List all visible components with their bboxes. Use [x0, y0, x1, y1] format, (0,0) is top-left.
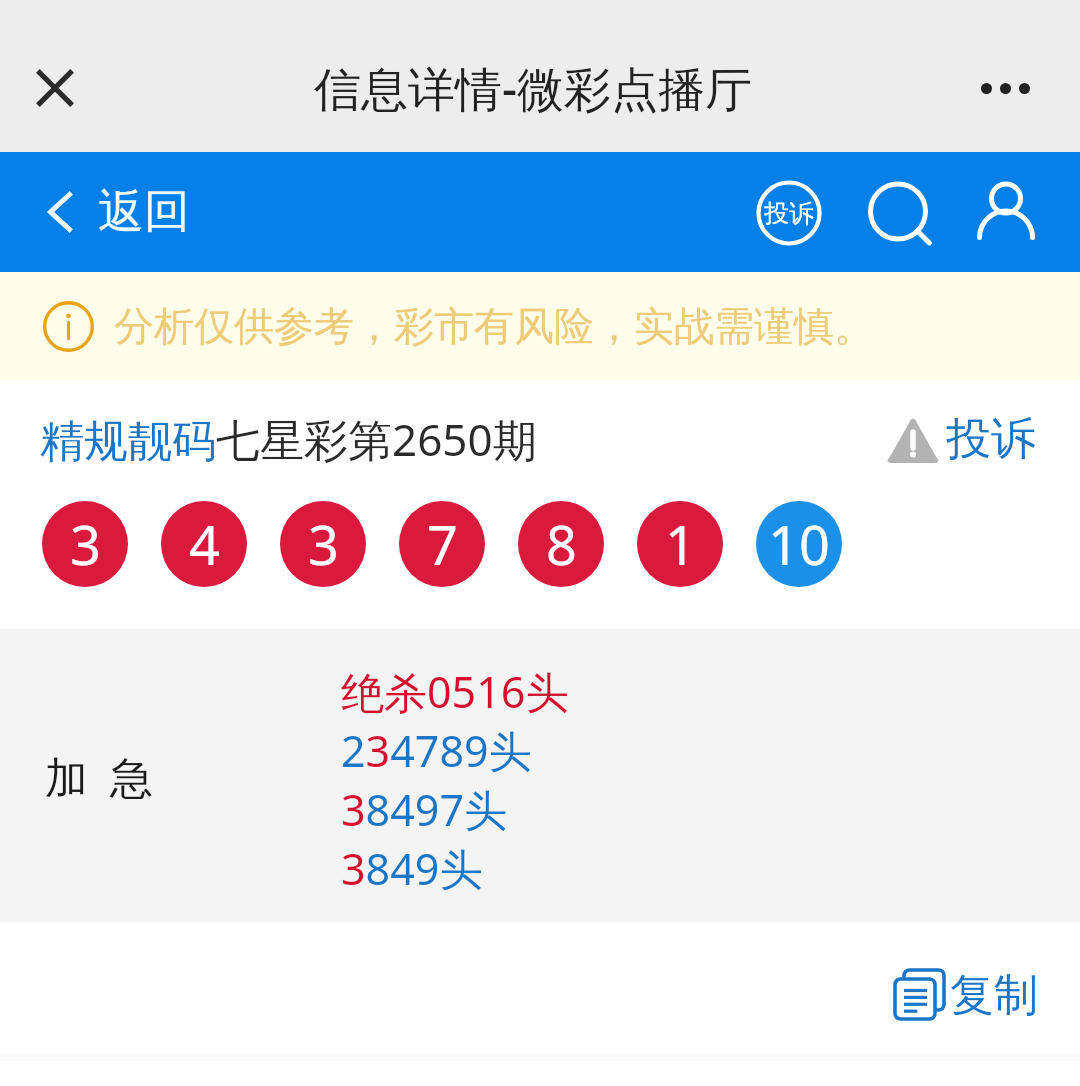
- staticText: 信息详情-微彩点播厅: [314, 56, 753, 120]
- staticText: 8: [546, 507, 577, 581]
- button[interactable]: Account: [962, 179, 1050, 267]
- button[interactable]: Search: [854, 170, 942, 258]
- button[interactable]: 10: [756, 501, 842, 587]
- staticText: 10: [768, 507, 830, 581]
- staticText: 4: [189, 507, 220, 581]
- button[interactable]: 投诉: [745, 169, 833, 257]
- staticText: 分析仅供参考，彩市有风险，实战需谨慎。: [114, 301, 874, 351]
- button[interactable]: 4: [161, 501, 247, 587]
- staticText: 投诉: [946, 411, 1036, 468]
- staticText: 1: [665, 507, 696, 581]
- button[interactable]: 7: [399, 501, 485, 587]
- staticText: 绝杀0516头: [341, 662, 569, 721]
- staticText: 7: [427, 507, 458, 581]
- staticText: 返回: [98, 183, 190, 241]
- button[interactable]: 3: [280, 501, 366, 587]
- staticText: 3: [308, 507, 339, 581]
- staticText: 38497头: [341, 780, 507, 839]
- button[interactable]: 返回: [48, 183, 190, 241]
- staticText: 234789头: [341, 721, 532, 780]
- button[interactable]: 8: [518, 501, 604, 587]
- button[interactable]: 复制: [895, 968, 1038, 1023]
- button[interactable]: 投诉: [885, 411, 1036, 468]
- button[interactable]: Close: [20, 53, 90, 123]
- staticText: 复制: [950, 968, 1038, 1023]
- button[interactable]: 3: [42, 501, 128, 587]
- button[interactable]: More options: [981, 53, 1030, 123]
- button[interactable]: 1: [637, 501, 723, 587]
- staticText: 3849头: [341, 839, 483, 898]
- staticText: 投诉: [764, 198, 814, 229]
- staticText: 加 急: [45, 747, 154, 806]
- staticText: 3: [70, 507, 101, 581]
- staticText: 精规靓码七星彩第2650期: [40, 409, 537, 469]
